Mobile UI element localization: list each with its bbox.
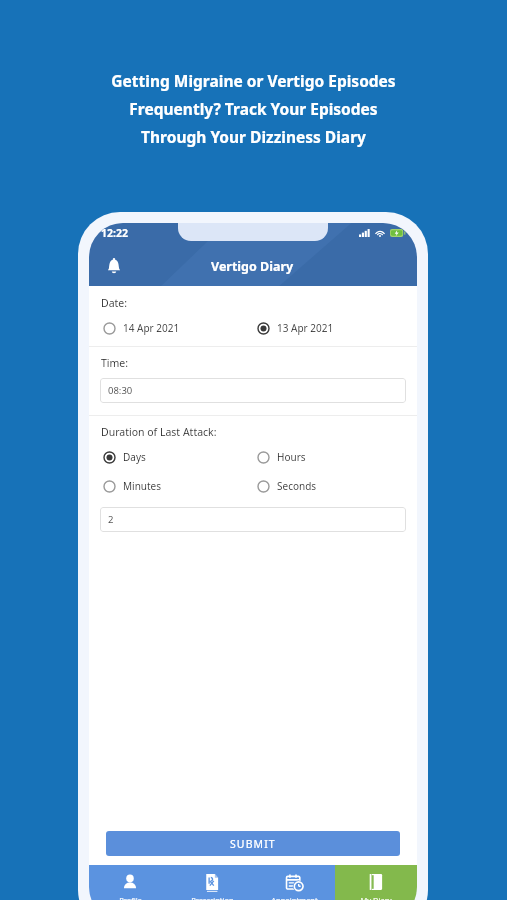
staticText: Date:	[101, 296, 128, 310]
button[interactable]: Seconds	[253, 477, 407, 495]
button[interactable]: 2	[100, 507, 406, 532]
button[interactable]: My Diary	[335, 865, 417, 900]
staticText: 08:30	[108, 384, 133, 397]
button[interactable]: 08:30	[100, 378, 406, 403]
button[interactable]: Notifications	[97, 249, 131, 283]
staticText: Appointment	[271, 895, 318, 900]
button[interactable]: SUBMIT	[106, 831, 400, 856]
staticText: Hours	[277, 450, 306, 464]
staticText: Seconds	[277, 479, 317, 493]
staticText: Days	[123, 450, 146, 464]
button[interactable]: Hours	[253, 448, 407, 466]
button[interactable]: 13 Apr 2021	[253, 319, 407, 337]
button[interactable]: Profile	[89, 865, 171, 900]
staticText: My Diary	[360, 895, 392, 900]
staticText: SUBMIT	[230, 837, 276, 851]
staticText: Time:	[101, 356, 129, 370]
button[interactable]: 14 Apr 2021	[99, 319, 253, 337]
staticText: Prescription	[191, 895, 234, 900]
staticText: Vertigo Diary	[211, 258, 294, 275]
staticText: Minutes	[123, 479, 162, 493]
staticText: 14 Apr 2021	[123, 321, 180, 335]
button[interactable]: Minutes	[99, 477, 253, 495]
button[interactable]: Appointment	[253, 865, 335, 900]
staticText: 13 Apr 2021	[277, 321, 334, 335]
staticText: Profile	[119, 895, 142, 900]
staticText: Through Your Dizziness Diary	[28, 126, 479, 147]
button[interactable]: Days	[99, 448, 253, 466]
staticText: 12:22	[101, 226, 128, 240]
button[interactable]: Prescription	[171, 865, 253, 900]
staticText: Frequently? Track Your Episodes	[28, 98, 479, 119]
staticText: Getting Migraine or Vertigo Episodes	[28, 70, 479, 91]
staticText: Duration of Last Attack:	[101, 425, 217, 439]
staticText: 2	[108, 513, 114, 526]
